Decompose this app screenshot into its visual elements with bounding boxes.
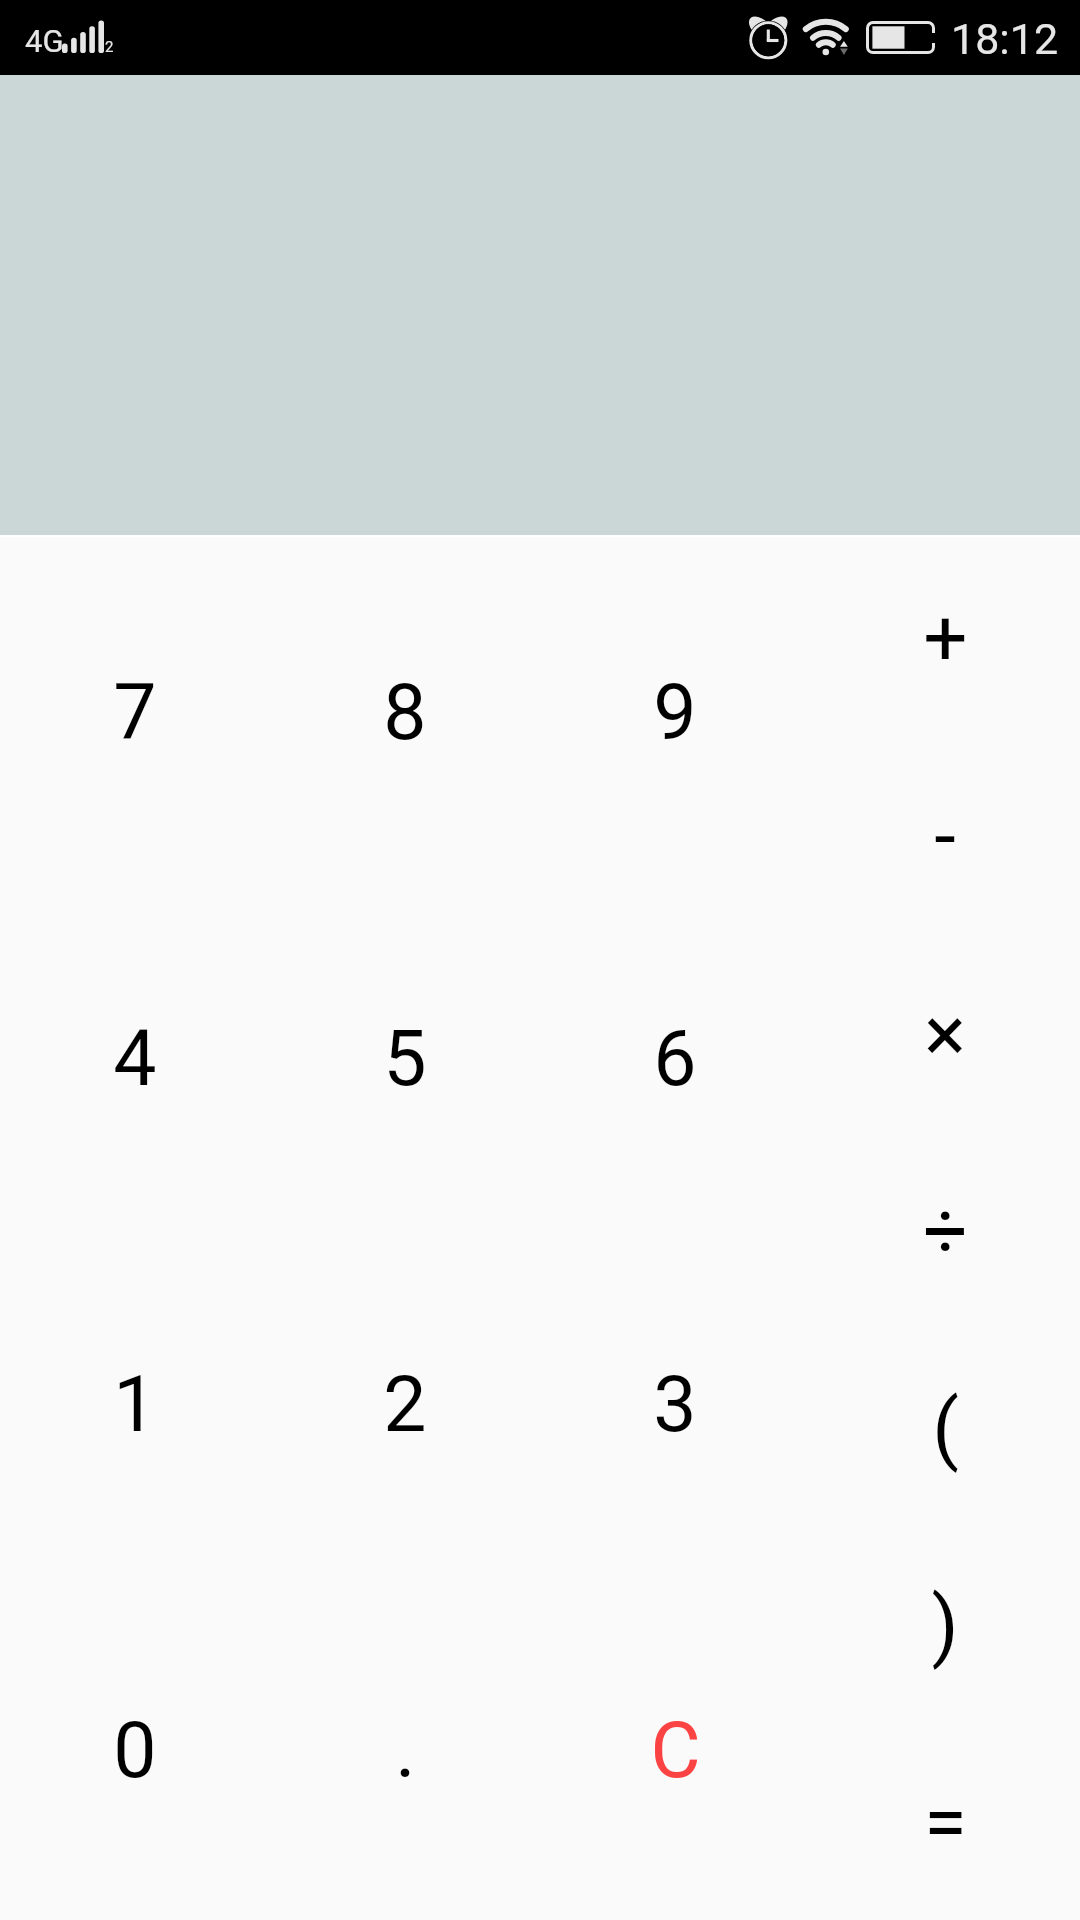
staticText: 0 [113, 1706, 157, 1796]
staticText: + [923, 593, 968, 684]
staticText: 8 [383, 668, 427, 758]
button[interactable]: 8 [270, 540, 540, 886]
button[interactable]: 7 [0, 540, 270, 886]
button[interactable]: plus [810, 539, 1080, 737]
staticText: 9 [653, 668, 697, 758]
staticText: ) [931, 1580, 959, 1671]
staticText: . [395, 1706, 416, 1796]
staticText: = [924, 1777, 967, 1868]
button[interactable]: close parenthesis [810, 1527, 1080, 1724]
button[interactable]: equals [810, 1724, 1080, 1920]
button[interactable]: 2 [270, 1232, 540, 1578]
staticText: 7 [113, 668, 157, 758]
staticText: 2 [105, 38, 114, 56]
button[interactable]: divide [810, 1133, 1080, 1330]
button[interactable]: C [540, 1578, 810, 1920]
staticText: 4 [113, 1014, 157, 1104]
button[interactable]: 6 [540, 886, 810, 1232]
staticText: 6 [653, 1014, 697, 1104]
staticText: 4G [25, 23, 64, 59]
button[interactable]: 0 [0, 1578, 270, 1920]
button[interactable]: 1 [0, 1232, 270, 1578]
staticText: × [924, 989, 966, 1080]
button[interactable]: open parenthesis [810, 1330, 1080, 1527]
button[interactable]: multiply [810, 935, 1080, 1133]
button[interactable]: minus [810, 737, 1080, 935]
staticText: 2 [383, 1360, 427, 1450]
staticText: 3 [653, 1360, 697, 1450]
button[interactable]: 9 [540, 540, 810, 886]
button[interactable]: . [270, 1578, 540, 1920]
staticText: 5 [383, 1014, 427, 1104]
staticText: ( [932, 1383, 959, 1474]
button[interactable]: 4 [0, 886, 270, 1232]
staticText: 18:12 [951, 14, 1059, 64]
staticText: C [650, 1706, 701, 1796]
button[interactable]: 5 [270, 886, 540, 1232]
staticText: ÷ [923, 1186, 968, 1277]
staticText: - [934, 791, 956, 882]
staticText: 1 [113, 1360, 157, 1450]
button[interactable]: 3 [540, 1232, 810, 1578]
